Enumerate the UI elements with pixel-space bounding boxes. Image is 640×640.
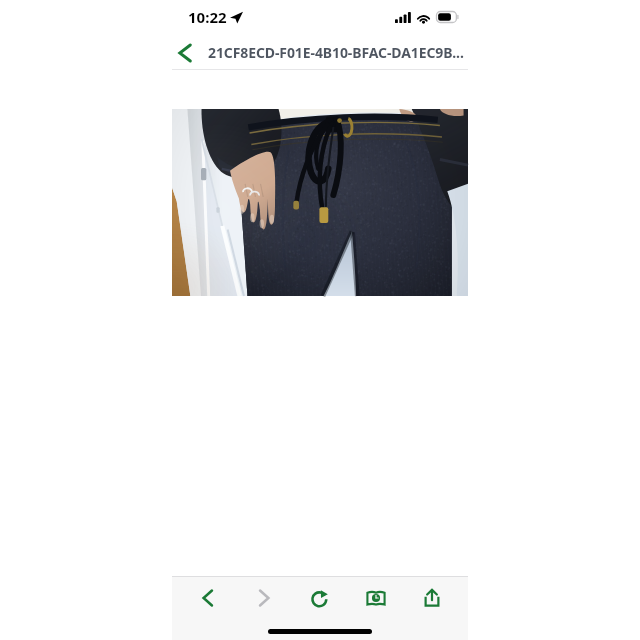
button[interactable]: Reload bbox=[302, 580, 338, 616]
button[interactable]: Forward bbox=[246, 580, 282, 616]
staticText: 10:22 bbox=[188, 7, 227, 27]
button[interactable]: Photo of dark denim jeans bbox=[172, 109, 468, 296]
button[interactable]: Share bbox=[414, 580, 450, 616]
button[interactable]: Back bbox=[190, 580, 226, 616]
button[interactable]: Bookmarks bbox=[358, 580, 394, 616]
button[interactable]: Back bbox=[172, 36, 208, 69]
staticText: 21CF8ECD-F01E-4B10-BFAC-DA1EC9B... bbox=[208, 43, 464, 62]
button[interactable]: Back bbox=[172, 36, 468, 69]
